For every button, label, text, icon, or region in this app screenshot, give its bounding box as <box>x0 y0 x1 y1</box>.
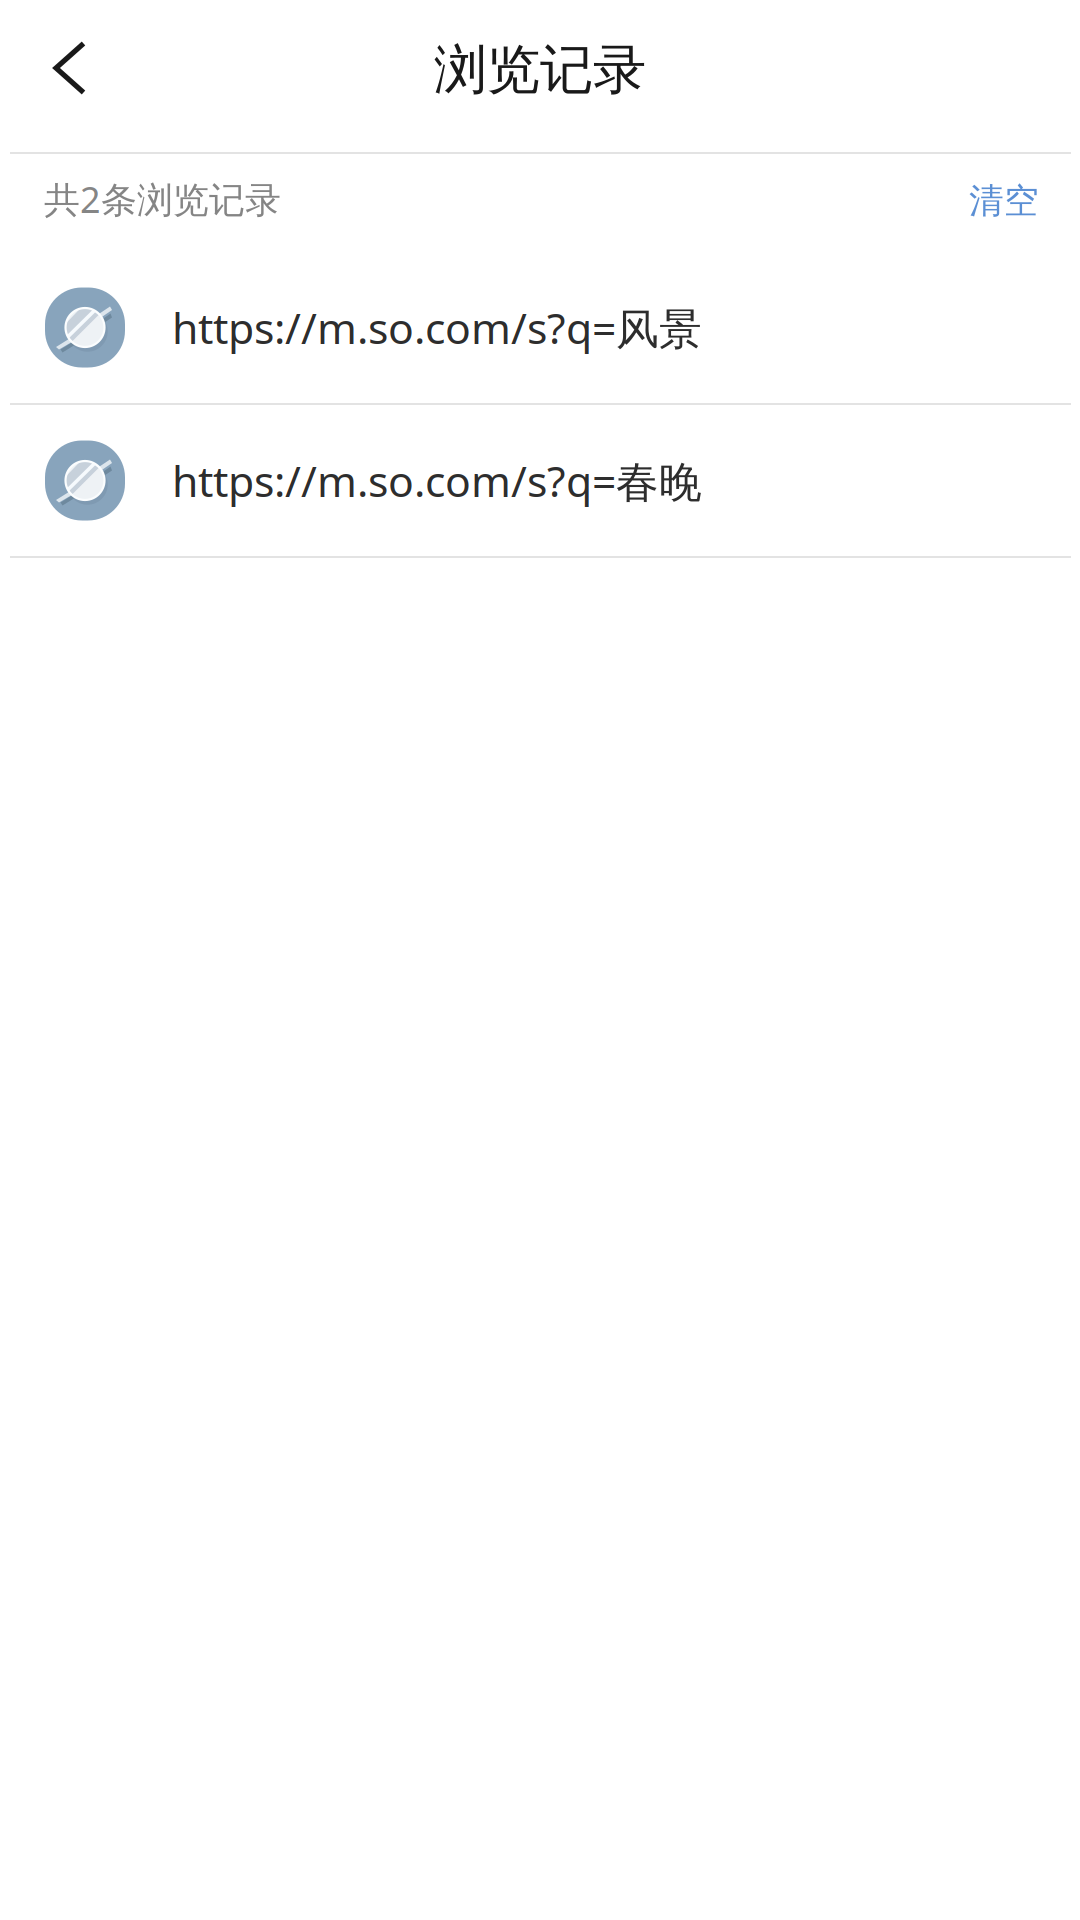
button[interactable]: 清空 <box>939 154 1069 252</box>
button[interactable]: https://m.so.com/s?q=风景 <box>0 252 1080 403</box>
button[interactable]: https://m.so.com/s?q=春晚 <box>0 405 1080 556</box>
staticText: https://m.so.com/s?q=春晚 <box>172 451 702 510</box>
button[interactable]: Back <box>0 18 100 118</box>
staticText: 清空 <box>969 179 1039 223</box>
staticText: 共2条浏览记录 <box>44 174 281 223</box>
staticText: 浏览记录 <box>434 36 646 104</box>
staticText: https://m.so.com/s?q=风景 <box>172 298 702 357</box>
